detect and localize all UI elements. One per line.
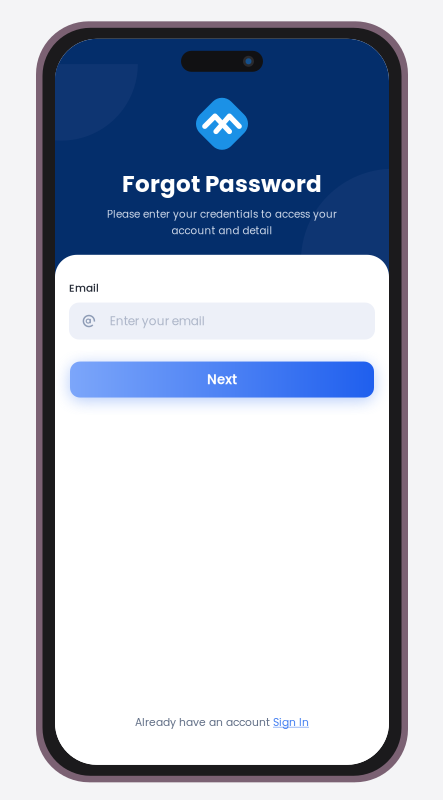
staticText: Forgot Password (122, 168, 322, 200)
staticText: Sign In (273, 715, 309, 730)
staticText: Email (69, 281, 99, 295)
button[interactable]: Next (70, 361, 374, 397)
staticText: account and detail (171, 223, 272, 238)
staticText: Next (207, 370, 237, 389)
staticText: Already have an account (135, 715, 270, 730)
staticText: Please enter your credentials to access … (107, 207, 337, 221)
button[interactable]: Enter your email (69, 302, 375, 339)
staticText: Enter your email (110, 313, 205, 329)
button[interactable]: Already have an account (127, 710, 317, 735)
